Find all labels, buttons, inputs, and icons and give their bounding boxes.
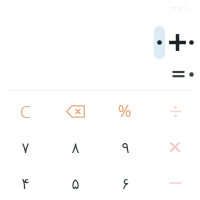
staticText: ۵ xyxy=(71,175,80,192)
button[interactable]: ۴ xyxy=(0,165,50,200)
button[interactable]: ۶ xyxy=(100,165,150,200)
staticText: ۴ xyxy=(21,175,30,192)
staticText: ۹ xyxy=(121,139,130,156)
staticText: ۷ xyxy=(21,139,30,156)
button[interactable]: Backspace xyxy=(50,93,100,129)
button[interactable]: ۵ xyxy=(50,165,100,200)
button[interactable]: C xyxy=(0,93,50,129)
staticText: ۸ xyxy=(71,139,80,156)
staticText: ۶ xyxy=(121,175,130,192)
button[interactable]: ۷ xyxy=(0,129,50,165)
button[interactable]: % xyxy=(100,93,150,129)
button[interactable]: Divide xyxy=(150,93,200,129)
button[interactable]: Minus xyxy=(150,165,200,200)
button[interactable]: ۹ xyxy=(100,129,150,165)
staticText: % xyxy=(118,100,132,122)
staticText: = ٢١٠ xyxy=(171,2,193,14)
staticText: C xyxy=(20,100,31,123)
button[interactable]: ۸ xyxy=(50,129,100,165)
button[interactable]: Multiply xyxy=(150,129,200,165)
